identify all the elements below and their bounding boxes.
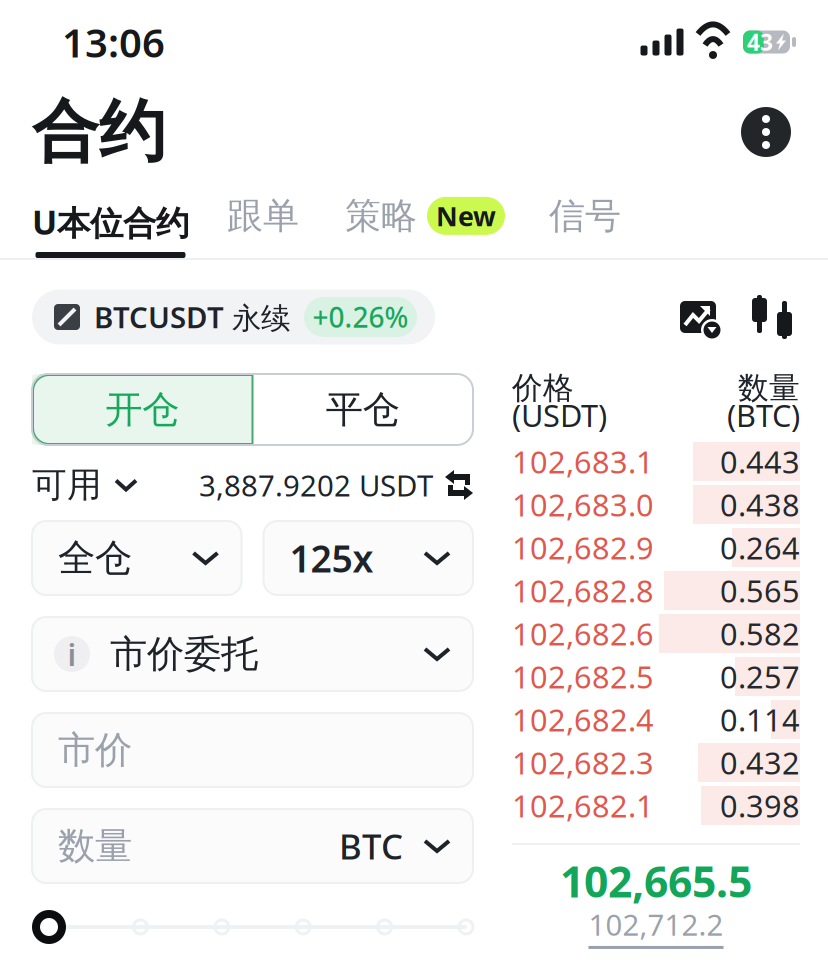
staticText: 102,665.5 xyxy=(560,853,752,909)
staticText: (USDT) xyxy=(512,395,607,435)
button[interactable]: 策略 xyxy=(345,194,505,258)
button[interactable]: Depth chart xyxy=(752,294,792,340)
button[interactable]: Price chart xyxy=(676,296,720,338)
staticText: 0.582 xyxy=(720,613,800,654)
staticText: 0.565 xyxy=(720,570,800,611)
staticText: 125x xyxy=(289,533,373,583)
staticText: 价格 xyxy=(512,369,574,407)
staticText: BTCUSDT 永续 xyxy=(94,297,290,336)
staticText: 0.257 xyxy=(720,656,800,697)
staticText: 市价 xyxy=(58,727,132,773)
button[interactable]: 可用 xyxy=(32,464,138,506)
staticText: 跟单 xyxy=(227,194,299,238)
button[interactable]: i xyxy=(32,617,473,691)
staticText: (BTC) xyxy=(727,395,800,435)
staticText: 102,682.3 xyxy=(512,742,654,783)
staticText: New xyxy=(436,198,496,234)
staticText: 102,712.2 xyxy=(588,905,723,944)
staticText: 102,682.4 xyxy=(512,699,654,740)
staticText: 数量 xyxy=(738,369,800,407)
staticText: 市价委托 xyxy=(110,631,258,677)
button[interactable]: BTCUSDT 永续 xyxy=(32,289,435,344)
staticText: 102,682.8 xyxy=(512,570,654,611)
staticText: 0.264 xyxy=(720,527,800,568)
staticText: 3,887.9202 USDT xyxy=(199,465,433,504)
staticText: 0.114 xyxy=(720,699,800,740)
staticText: 开仓 xyxy=(105,387,179,432)
staticText: 0.398 xyxy=(720,785,800,826)
button[interactable]: 信号 xyxy=(549,194,621,258)
button[interactable]: 市价 xyxy=(32,713,473,787)
button[interactable]: 全仓 xyxy=(32,521,241,595)
staticText: 102,682.9 xyxy=(512,527,654,568)
staticText: BTC xyxy=(339,823,403,869)
button[interactable]: 3,887.9202 USDT xyxy=(199,465,473,504)
staticText: 0.443 xyxy=(720,441,800,482)
staticText: 102,683.0 xyxy=(512,484,654,525)
staticText: 102,682.6 xyxy=(512,613,654,654)
button[interactable]: 平仓 xyxy=(252,374,473,445)
staticText: 可用 xyxy=(32,464,102,506)
button[interactable]: 125x xyxy=(263,521,473,595)
button[interactable]: 开仓 xyxy=(32,374,252,445)
staticText: 数量 xyxy=(58,823,132,869)
button[interactable]: U本位合约 xyxy=(32,200,189,258)
staticText: 43 xyxy=(747,27,773,57)
button[interactable]: 跟单 xyxy=(227,194,299,258)
staticText: 102,682.1 xyxy=(512,785,654,826)
staticText: 13:06 xyxy=(62,15,165,68)
staticText: U本位合约 xyxy=(32,200,189,244)
staticText: 平仓 xyxy=(326,387,400,432)
staticText: 0.438 xyxy=(720,484,800,525)
button[interactable]: More options xyxy=(728,94,804,170)
button[interactable]: 数量 xyxy=(32,809,473,883)
staticText: 合约 xyxy=(32,91,166,173)
staticText: +0.26% xyxy=(312,298,408,336)
staticText: 102,682.5 xyxy=(512,656,654,697)
staticText: 策略 xyxy=(345,194,417,238)
staticText: 全仓 xyxy=(58,535,132,581)
staticText: 信号 xyxy=(549,194,621,238)
staticText: i xyxy=(67,634,76,674)
staticText: 102,683.1 xyxy=(512,441,654,482)
staticText: 0.432 xyxy=(720,742,800,783)
